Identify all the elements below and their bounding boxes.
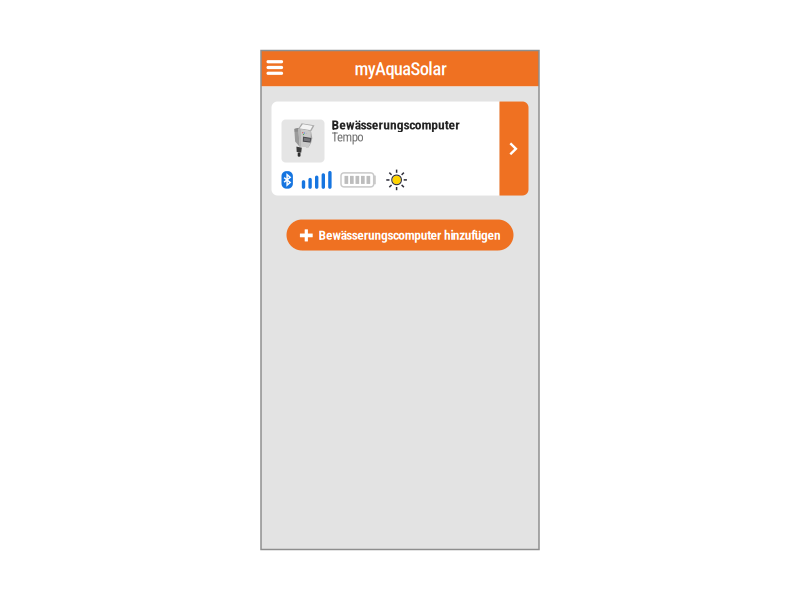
staticText: myAquaSolar	[354, 58, 447, 80]
staticText: Tempo	[331, 130, 363, 145]
staticText: Bewässerungscomputer hinzufügen	[318, 227, 501, 243]
button[interactable]: Bewässerungscomputer hinzufügen	[286, 219, 513, 250]
button[interactable]: Menu	[261, 50, 285, 74]
button[interactable]: Bewässerungscomputer	[271, 101, 528, 195]
staticText: Bewässerungscomputer	[331, 117, 460, 133]
